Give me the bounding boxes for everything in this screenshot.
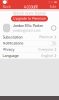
- button[interactable]: Upgrade to Premium: [11, 16, 48, 21]
- button[interactable]: Privacy: [0, 46, 59, 53]
- staticText: 9:41: [2, 0, 8, 4]
- button[interactable]: Language: [0, 53, 59, 59]
- staticText: Back: [3, 5, 11, 9]
- button[interactable]: Subscription: [0, 34, 59, 40]
- button[interactable]: Edit: [48, 4, 57, 9]
- staticText: Unlock every feature: [13, 12, 46, 15]
- staticText: Premium: [39, 35, 53, 39]
- staticText: Notifications: [2, 41, 23, 45]
- staticText: LTE: [48, 1, 53, 4]
- staticText: Edit: [50, 5, 56, 9]
- staticText: Upgrade to Premium: [13, 16, 46, 21]
- staticText: English: [41, 54, 53, 58]
- staticText: Account: [23, 4, 37, 9]
- staticText: Language: [2, 53, 18, 58]
- staticText: Jordan Ellis Parker: [13, 23, 43, 28]
- staticText: Subscription: [2, 35, 22, 39]
- button[interactable]: Back: [1, 4, 12, 9]
- staticText: Privacy: [2, 47, 14, 52]
- button[interactable]: Notifications: [0, 40, 59, 46]
- staticText: Everyone: [38, 47, 53, 51]
- button[interactable]: Jordan Ellis Parker: [0, 22, 59, 34]
- staticText: jordan@mail.com: [13, 29, 41, 32]
